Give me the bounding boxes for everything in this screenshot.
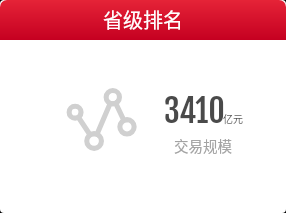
button[interactable]: 省级排名 bbox=[0, 0, 286, 40]
other: Network chart bbox=[60, 83, 136, 159]
staticText: 交易规模 bbox=[174, 135, 232, 156]
staticText: 3410 bbox=[164, 91, 225, 131]
staticText: 亿元 bbox=[223, 111, 243, 125]
staticText: 省级排名 bbox=[103, 5, 183, 34]
button[interactable]: Network chart bbox=[0, 40, 286, 213]
